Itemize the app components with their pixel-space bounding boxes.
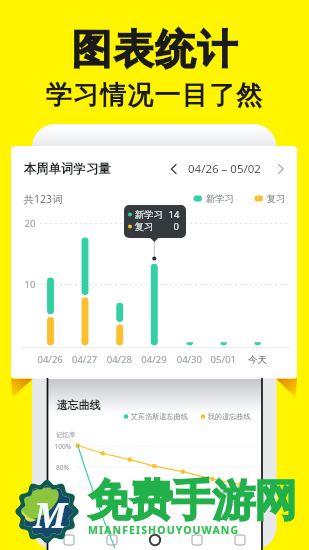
other: Chart statistics screen — [0, 0, 309, 550]
button[interactable]: Chart statistics screen — [0, 0, 309, 550]
